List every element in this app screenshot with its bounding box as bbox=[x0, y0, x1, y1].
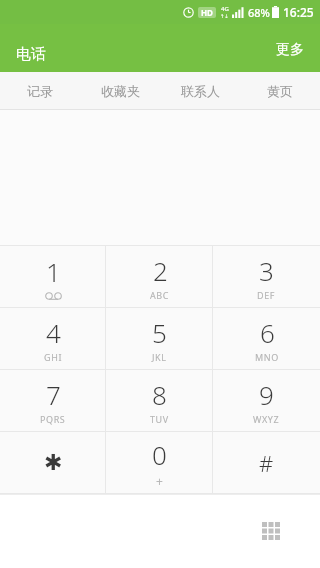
button[interactable]: 1 bbox=[0, 246, 106, 307]
staticText: 4G bbox=[221, 5, 229, 13]
button[interactable]: # bbox=[213, 432, 320, 493]
button[interactable]: 更多 bbox=[260, 31, 320, 65]
button[interactable]: 黄页 bbox=[240, 72, 320, 109]
button[interactable]: 0 bbox=[106, 432, 213, 493]
staticText: WXYZ bbox=[253, 413, 280, 425]
staticText: 16:25 bbox=[283, 4, 314, 20]
staticText: 1 bbox=[46, 254, 61, 289]
staticText: 3 bbox=[259, 253, 274, 288]
staticText: ✱ bbox=[44, 450, 63, 476]
staticText: 5 bbox=[152, 315, 167, 350]
staticText: 7 bbox=[46, 377, 61, 412]
staticText: 黄页 bbox=[267, 83, 293, 99]
staticText: GHI bbox=[44, 351, 63, 363]
button[interactable]: ✱ bbox=[0, 432, 106, 493]
staticText: PQRS bbox=[40, 413, 66, 425]
staticText: 联系人 bbox=[181, 83, 220, 99]
staticText: ABC bbox=[150, 289, 170, 301]
staticText: JKL bbox=[152, 351, 167, 363]
staticText: 8 bbox=[152, 377, 167, 412]
staticText: 9 bbox=[259, 377, 274, 412]
staticText: 收藏夹 bbox=[101, 83, 140, 99]
staticText: HD bbox=[201, 7, 213, 18]
button[interactable]: 2 bbox=[106, 246, 213, 307]
staticText: ↑↓ bbox=[220, 13, 229, 19]
button[interactable]: 4 bbox=[0, 308, 106, 369]
staticText: + bbox=[156, 473, 164, 489]
button[interactable]: Dialpad bbox=[252, 512, 290, 550]
button[interactable]: 7 bbox=[0, 370, 106, 431]
staticText: 4 bbox=[46, 315, 61, 350]
staticText: 0 bbox=[152, 437, 167, 472]
staticText: 2 bbox=[153, 253, 168, 288]
staticText: DEF bbox=[257, 289, 276, 301]
button[interactable]: 记录 bbox=[0, 72, 80, 109]
staticText: 68% bbox=[248, 5, 270, 20]
staticText: 电话 bbox=[16, 45, 46, 64]
staticText: TUV bbox=[150, 413, 169, 425]
staticText: # bbox=[259, 448, 274, 478]
button[interactable]: 3 bbox=[213, 246, 320, 307]
button[interactable]: 收藏夹 bbox=[80, 72, 160, 109]
staticText: 记录 bbox=[27, 83, 53, 99]
button[interactable]: 9 bbox=[213, 370, 320, 431]
staticText: MNO bbox=[255, 351, 279, 363]
staticText: 更多 bbox=[276, 41, 304, 59]
staticText: 6 bbox=[260, 315, 275, 350]
button[interactable]: 8 bbox=[106, 370, 213, 431]
button[interactable]: 6 bbox=[213, 308, 320, 369]
button[interactable]: 联系人 bbox=[160, 72, 240, 109]
button[interactable]: 5 bbox=[106, 308, 213, 369]
